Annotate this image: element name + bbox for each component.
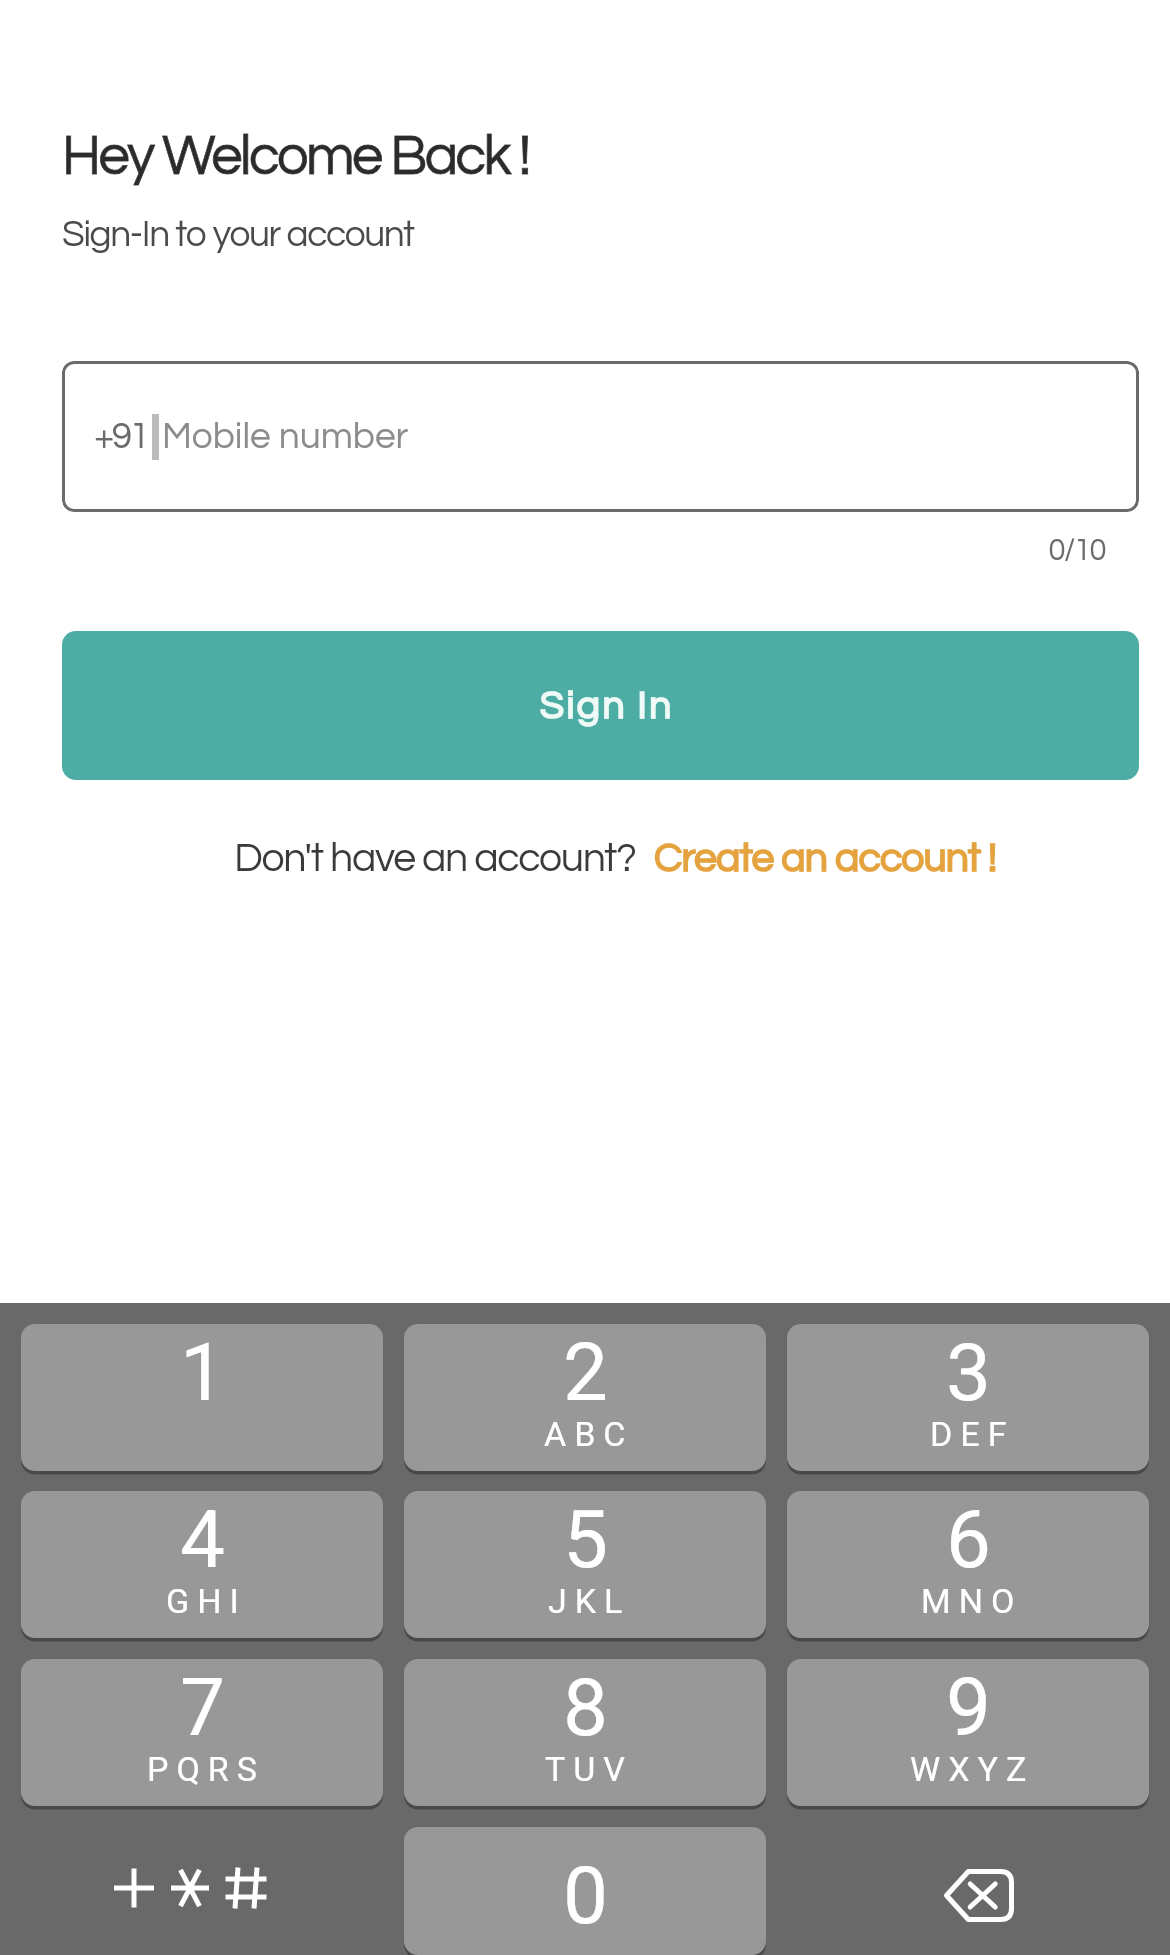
staticText: Sign In xyxy=(540,686,674,726)
staticText: WXYZ xyxy=(910,1749,1035,1789)
staticText: 0 xyxy=(563,1849,608,1943)
button[interactable]: 8 xyxy=(404,1659,766,1806)
staticText: ABC xyxy=(544,1414,634,1454)
button[interactable]: 1 xyxy=(21,1324,383,1471)
button[interactable]: 7 xyxy=(21,1659,383,1806)
button[interactable]: 2 xyxy=(404,1324,766,1471)
button[interactable]: +91 xyxy=(62,361,1139,512)
button[interactable]: 3 xyxy=(787,1324,1149,1471)
staticText: MNO xyxy=(921,1581,1023,1621)
staticText: 3 xyxy=(946,1326,991,1420)
staticText: 4 xyxy=(180,1493,225,1587)
staticText: PQRS xyxy=(147,1749,265,1789)
button[interactable]: 9 xyxy=(787,1659,1149,1806)
staticText: +91 xyxy=(94,418,148,456)
button[interactable]: 6 xyxy=(787,1491,1149,1638)
staticText: 5 xyxy=(563,1493,608,1587)
staticText: Sign In xyxy=(540,686,674,726)
button[interactable]: 4 xyxy=(21,1491,383,1638)
staticText: Hey Welcome Back ! xyxy=(62,128,529,186)
staticText: 0/10 xyxy=(0,535,1105,567)
staticText: Sign-In to your account xyxy=(62,216,414,254)
staticText: 8 xyxy=(563,1661,608,1755)
staticText: 7 xyxy=(180,1661,225,1755)
staticText: Mobile number xyxy=(162,418,409,456)
staticText: Create an account ! xyxy=(654,837,997,879)
staticText: 9 xyxy=(946,1661,991,1755)
button[interactable]: 0 xyxy=(404,1827,766,1955)
staticText: DEF xyxy=(930,1414,1015,1454)
staticText: Create an account ! xyxy=(654,837,997,879)
staticText: TUV xyxy=(545,1749,633,1789)
staticText: 6 xyxy=(946,1493,991,1587)
staticText: JKL xyxy=(548,1581,631,1621)
staticText: Don't have an account? xyxy=(234,837,636,879)
staticText: GHI xyxy=(166,1581,247,1621)
button[interactable]: 5 xyxy=(404,1491,766,1638)
button[interactable]: Create an account ! xyxy=(654,837,997,879)
button[interactable]: Backspace xyxy=(787,1827,1149,1955)
staticText: 1 xyxy=(180,1326,225,1420)
button[interactable]: Symbols xyxy=(21,1827,383,1955)
staticText: 2 xyxy=(563,1326,608,1420)
button[interactable]: Sign In xyxy=(62,631,1139,780)
staticText: Hey Welcome Back ! xyxy=(62,128,529,186)
